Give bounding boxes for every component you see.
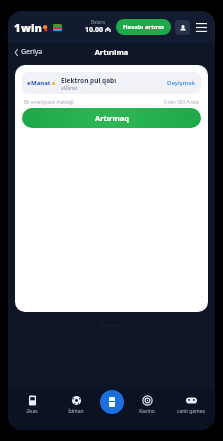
button[interactable]: Əsas bbox=[12, 393, 52, 417]
staticText: Bir əməliyyatın məbləği bbox=[24, 99, 74, 105]
staticText: Elektron pul qabı bbox=[61, 76, 117, 85]
button[interactable]: Profile bbox=[175, 20, 190, 35]
button[interactable]: Geriyə bbox=[14, 47, 47, 57]
staticText: 1 bbox=[14, 20, 21, 35]
staticText: İdman bbox=[56, 408, 96, 415]
staticText: 10.00 ₼ bbox=[85, 25, 111, 35]
button[interactable]: Language bbox=[53, 24, 62, 31]
button[interactable]: İdman bbox=[56, 393, 96, 417]
button[interactable]: Hesabı artırın bbox=[116, 19, 171, 35]
staticText: canlı games bbox=[171, 408, 211, 415]
staticText: win bbox=[21, 20, 42, 35]
button[interactable]: canlı games bbox=[171, 393, 211, 417]
staticText: Artırılma bbox=[14, 47, 209, 57]
staticText: Artırmaq bbox=[95, 113, 129, 123]
button[interactable]: e bbox=[22, 72, 201, 94]
staticText: Geriyə bbox=[21, 47, 43, 57]
staticText: Əsas bbox=[12, 408, 52, 415]
staticText: e bbox=[27, 79, 31, 87]
button[interactable]: Bet slip bbox=[100, 390, 124, 414]
staticText: Kazino bbox=[127, 408, 167, 415]
staticText: 5-dən 500 ₼-dək bbox=[164, 99, 199, 105]
button[interactable]: Kazino bbox=[127, 393, 167, 417]
staticText: Balans bbox=[91, 19, 106, 25]
button[interactable]: Menu bbox=[194, 20, 209, 35]
button[interactable]: Artırmaq bbox=[22, 108, 201, 128]
button[interactable]: 1 bbox=[14, 20, 49, 35]
staticText: Hesabı artırın bbox=[123, 23, 164, 31]
staticText: eManat bbox=[61, 85, 78, 91]
staticText: Manat bbox=[31, 79, 51, 87]
staticText: Dəyişmək bbox=[167, 79, 196, 87]
